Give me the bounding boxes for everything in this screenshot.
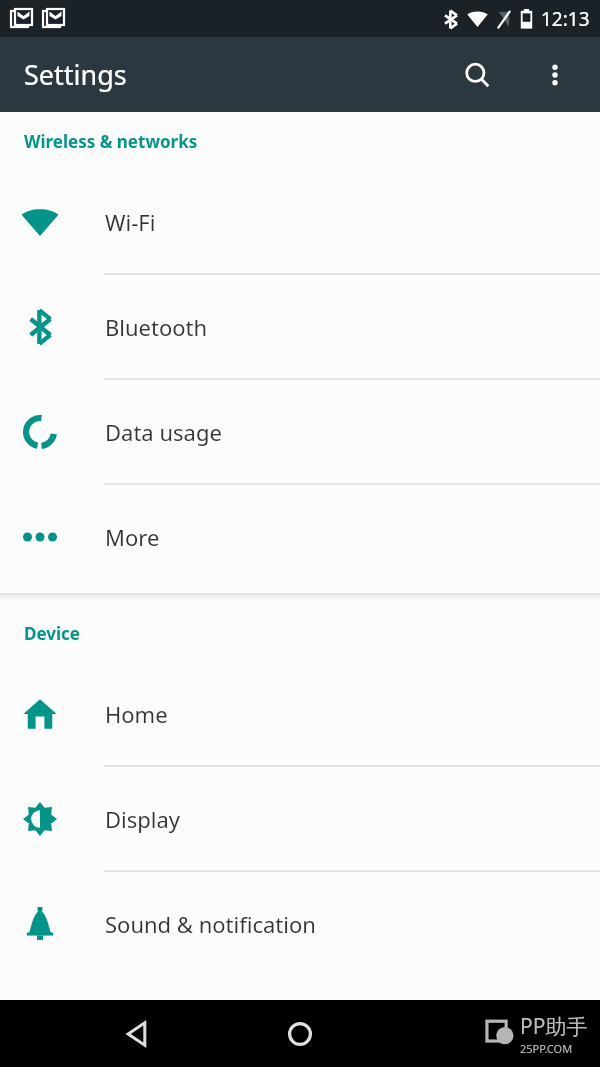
staticText: Wireless & networks — [24, 130, 198, 153]
staticText: Device — [24, 622, 80, 645]
button[interactable]: Display — [0, 767, 600, 872]
button[interactable]: More — [0, 485, 600, 590]
staticText: Display — [105, 804, 181, 834]
button[interactable]: Bluetooth — [0, 275, 600, 380]
button[interactable]: Sound & notification — [0, 872, 600, 977]
button[interactable]: More options — [530, 50, 580, 100]
staticText: Home — [105, 699, 168, 729]
staticText: PP助手 — [520, 1012, 588, 1041]
button[interactable]: Data usage — [0, 380, 600, 485]
staticText: Data usage — [105, 417, 222, 447]
staticText: Wi-Fi — [105, 207, 156, 237]
staticText: Settings — [24, 56, 127, 93]
button[interactable]: Search — [452, 50, 502, 100]
staticText: Sound & notification — [105, 909, 316, 939]
staticText: More — [105, 522, 160, 552]
staticText: 25PP.COM — [520, 1041, 573, 1056]
button[interactable]: Back — [110, 1007, 164, 1061]
staticText: 12:13 — [541, 6, 590, 32]
button[interactable]: Home — [273, 1007, 327, 1061]
staticText: Bluetooth — [105, 312, 208, 342]
button[interactable]: Home — [0, 662, 600, 767]
button[interactable]: Wi-Fi — [0, 170, 600, 275]
